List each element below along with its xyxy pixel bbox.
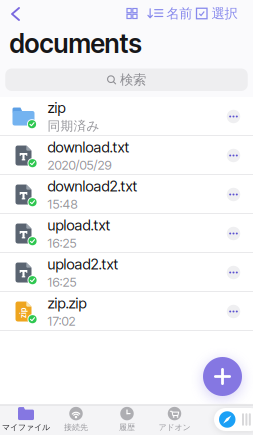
button[interactable]: upload2.txt [0, 253, 253, 292]
button[interactable]: zip [0, 292, 253, 331]
staticText: 16:25 [47, 274, 76, 290]
staticText: 履歴 [119, 422, 135, 432]
button[interactable]: download2.txt [0, 175, 253, 214]
staticText: zip [47, 99, 65, 117]
button[interactable]: More actions [227, 266, 240, 279]
button[interactable]: Grid view [124, 5, 140, 21]
staticText: 同期済み [47, 118, 99, 134]
button[interactable]: zip [0, 97, 253, 136]
button[interactable]: More actions [227, 149, 240, 162]
staticText: 名前 [166, 5, 192, 22]
staticText: download.txt [47, 138, 129, 156]
button[interactable]: アドオン [149, 404, 199, 434]
staticText: 選択 [211, 5, 237, 22]
button[interactable]: 履歴 [102, 404, 152, 434]
button[interactable]: upload.txt [0, 214, 253, 253]
staticText: 17:02 [47, 313, 75, 329]
button[interactable]: More actions [227, 188, 240, 201]
button[interactable]: 選択 [196, 5, 237, 22]
button[interactable]: download.txt [0, 136, 253, 175]
staticText: 接続先 [64, 422, 88, 432]
staticText: zip.zip [47, 294, 86, 312]
staticText: documents [9, 28, 141, 59]
staticText: upload2.txt [47, 255, 118, 273]
button[interactable]: 接続先 [51, 404, 101, 434]
button[interactable]: 名前 [148, 5, 192, 22]
staticText: 検索 [120, 72, 146, 88]
button[interactable]: More actions [227, 227, 240, 240]
staticText: zip [18, 308, 29, 317]
staticText: download2.txt [47, 177, 137, 195]
button[interactable]: Add [203, 357, 242, 396]
staticText: マイファイル [2, 422, 50, 432]
staticText: アドオン [158, 422, 190, 432]
button[interactable]: Back [6, 2, 25, 26]
staticText: 2020/05/29 [47, 157, 111, 173]
button[interactable]: More actions [227, 110, 240, 123]
button[interactable]: More actions [227, 305, 240, 318]
button[interactable]: Browser [214, 408, 253, 431]
staticText: 16:25 [47, 235, 76, 251]
button[interactable]: マイファイル [1, 404, 51, 434]
staticText: upload.txt [47, 216, 110, 234]
button[interactable]: Search [5, 68, 248, 91]
staticText: 15:48 [47, 196, 77, 212]
